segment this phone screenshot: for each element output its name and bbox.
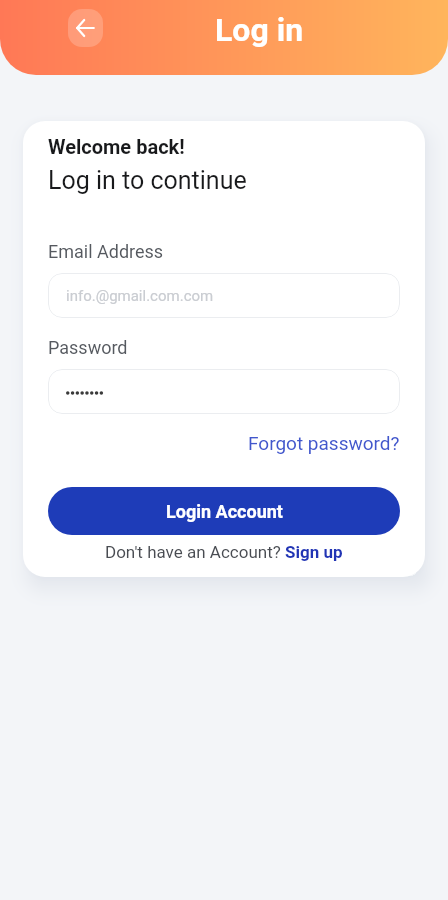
staticText: Login Account <box>166 501 283 522</box>
button[interactable]: Back <box>68 9 103 47</box>
staticText: Welcome back! <box>48 135 185 158</box>
button[interactable]: Login Account <box>48 487 400 535</box>
staticText: Don't have an Account? Sign up <box>105 542 343 562</box>
button[interactable]: Don't have an Account? Sign up <box>105 542 343 562</box>
staticText: info.@gmail.com.com <box>66 287 214 305</box>
staticText: Email Address <box>48 241 164 262</box>
staticText: Forgot password? <box>248 432 400 454</box>
staticText: Log in to continue <box>48 166 247 195</box>
staticText: Password <box>48 337 128 358</box>
button[interactable]: info.@gmail.com.com <box>48 273 400 318</box>
staticText: Log in <box>215 11 304 49</box>
button[interactable]: Forgot password? <box>248 432 400 454</box>
button[interactable] <box>48 369 400 414</box>
